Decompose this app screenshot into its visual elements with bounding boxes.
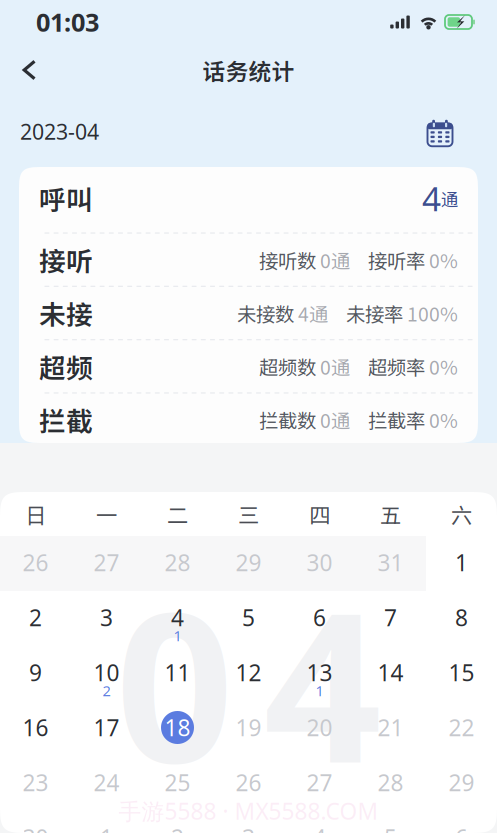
button[interactable]: 20	[284, 701, 355, 756]
button[interactable]: 29	[426, 756, 497, 811]
button[interactable]: 4	[142, 591, 213, 646]
staticText: 6	[313, 602, 326, 632]
staticText: 5	[242, 602, 255, 632]
staticText: 1	[100, 822, 113, 833]
button[interactable]: 9	[0, 646, 71, 701]
staticText: 29	[235, 547, 261, 577]
staticText: 16	[22, 712, 48, 742]
button[interactable]: 5	[213, 591, 284, 646]
button[interactable]: 14	[355, 646, 426, 701]
staticText: 1	[173, 626, 181, 645]
staticText: 六	[451, 499, 472, 529]
button[interactable]: 18	[142, 701, 213, 756]
button[interactable]: 28	[142, 536, 213, 591]
staticText: 28	[377, 767, 403, 797]
button[interactable]: 26	[0, 536, 71, 591]
staticText: 23	[22, 767, 48, 797]
button[interactable]: 27	[71, 536, 142, 591]
staticText: 15	[448, 657, 474, 687]
staticText: 四	[309, 499, 330, 529]
staticText: 超频	[39, 347, 93, 386]
button[interactable]: 24	[71, 756, 142, 811]
staticText: 13	[306, 657, 332, 687]
staticText: 12	[235, 657, 261, 687]
button[interactable]: 19	[213, 701, 284, 756]
button[interactable]: 16	[0, 701, 71, 756]
button[interactable]: 12	[213, 646, 284, 701]
staticText: 2	[102, 681, 110, 700]
button[interactable]: Choose month	[425, 115, 477, 147]
button[interactable]: 13	[284, 646, 355, 701]
staticText: 28	[164, 547, 190, 577]
button[interactable]: 21	[355, 701, 426, 756]
staticText: 11	[164, 657, 190, 687]
staticText: 拦截数	[259, 406, 316, 434]
staticText: 3	[242, 822, 255, 833]
button[interactable]: 4	[284, 811, 355, 833]
button[interactable]: 31	[355, 536, 426, 591]
button[interactable]: 5	[355, 811, 426, 833]
staticText: 2	[29, 602, 42, 632]
staticText: 31	[377, 547, 403, 577]
staticText: 0%	[425, 352, 458, 380]
staticText: 未接数	[237, 299, 294, 327]
staticText: 三	[238, 499, 259, 529]
button[interactable]: 15	[426, 646, 497, 701]
staticText: 30	[306, 547, 332, 577]
staticText: 1	[455, 547, 468, 577]
button[interactable]: 17	[71, 701, 142, 756]
button[interactable]: 8	[426, 591, 497, 646]
button[interactable]: 30	[0, 811, 71, 833]
staticText: 9	[29, 657, 42, 687]
button[interactable]: 27	[284, 756, 355, 811]
staticText: 0通	[316, 352, 350, 380]
staticText: 拦截	[39, 400, 93, 439]
button[interactable]: 6	[284, 591, 355, 646]
button[interactable]: 6	[426, 811, 497, 833]
button[interactable]: 26	[213, 756, 284, 811]
staticText: 27	[306, 767, 332, 797]
staticText: 4	[263, 545, 381, 819]
staticText: 4	[171, 602, 184, 632]
button[interactable]: Back	[8, 47, 51, 92]
button[interactable]: 10	[71, 646, 142, 701]
button[interactable]: 1	[71, 811, 142, 833]
button[interactable]: 2	[0, 591, 71, 646]
staticText: 0通	[316, 246, 350, 274]
staticText: 1	[315, 681, 323, 700]
staticText: 100%	[403, 299, 458, 327]
staticText: 未接	[39, 294, 93, 332]
button[interactable]: 25	[142, 756, 213, 811]
button[interactable]: 1	[426, 536, 497, 591]
staticText: 0通	[316, 406, 350, 434]
staticText: 未接率	[346, 299, 403, 327]
staticText: 4	[422, 176, 441, 221]
staticText: 五	[380, 499, 401, 529]
button[interactable]: 22	[426, 701, 497, 756]
button[interactable]: 3	[213, 811, 284, 833]
button[interactable]: 2	[142, 811, 213, 833]
staticText: 7	[384, 602, 397, 632]
staticText: 5	[384, 822, 397, 833]
staticText: 超频率	[368, 352, 425, 380]
button[interactable]: 3	[71, 591, 142, 646]
staticText: 话务统计	[202, 54, 294, 86]
staticText: 26	[22, 547, 48, 577]
staticText: 4	[313, 822, 326, 833]
staticText: 27	[93, 547, 119, 577]
staticText: 18	[164, 712, 190, 742]
staticText: 19	[235, 712, 261, 742]
button[interactable]: 23	[0, 756, 71, 811]
staticText: 01:03	[36, 5, 99, 39]
staticText: 接听数	[259, 246, 316, 274]
button[interactable]: 28	[355, 756, 426, 811]
staticText: 30	[22, 822, 48, 833]
staticText: 日	[25, 499, 46, 529]
staticText: 20	[306, 712, 332, 742]
button[interactable]: 7	[355, 591, 426, 646]
staticText: 26	[235, 767, 261, 797]
button[interactable]: 29	[213, 536, 284, 591]
staticText: 通	[441, 186, 458, 211]
button[interactable]: 11	[142, 646, 213, 701]
button[interactable]: 30	[284, 536, 355, 591]
